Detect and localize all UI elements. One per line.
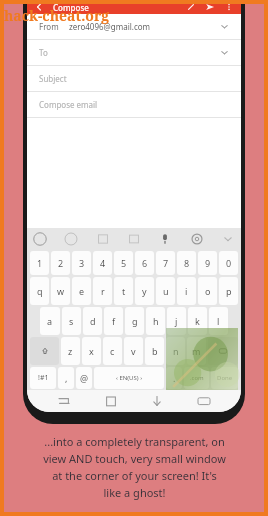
staticText: at the corner of your screen! It's (52, 468, 217, 483)
button[interactable]: k (188, 307, 207, 335)
button[interactable]: From (27, 14, 241, 40)
button[interactable]: Keyboard settings (32, 231, 48, 247)
button[interactable]: Emoji (63, 231, 79, 247)
button[interactable]: 2 (51, 251, 70, 275)
staticText: z (68, 345, 73, 357)
button[interactable]: Shift (30, 337, 59, 365)
button[interactable]: t (114, 277, 133, 305)
button[interactable]: 8 (177, 251, 196, 275)
staticText: view AND touch, very small window (43, 451, 226, 466)
button[interactable]: . (166, 367, 182, 389)
button[interactable]: o (198, 277, 217, 305)
button[interactable]: 6 (135, 251, 154, 275)
button[interactable]: s (62, 307, 81, 335)
staticText: ...into a completely transparent, on (44, 434, 225, 449)
staticText: v (131, 345, 136, 357)
button[interactable]: Stickers (95, 231, 111, 247)
staticText: b (152, 345, 158, 357)
staticText: k (195, 315, 200, 327)
button[interactable]: v (124, 337, 143, 365)
button[interactable]: w (51, 277, 70, 305)
button[interactable]: y (135, 277, 154, 305)
button[interactable]: c (103, 337, 122, 365)
staticText: m (192, 345, 201, 357)
button[interactable]: Keyboard (194, 391, 214, 411)
button[interactable]: Home (101, 391, 121, 411)
staticText: 2 (58, 257, 64, 269)
button[interactable]: g (125, 307, 144, 335)
staticText: 4 (100, 257, 106, 269)
button[interactable]: 1 (30, 251, 49, 275)
button[interactable]: More options (223, 1, 235, 13)
button[interactable]: q (30, 277, 49, 305)
staticText: e (79, 285, 85, 297)
staticText: p (226, 285, 232, 297)
button[interactable]: Voice input (157, 231, 173, 247)
button[interactable]: f (104, 307, 123, 335)
button[interactable]: h (146, 307, 165, 335)
button[interactable]: Collapse (220, 231, 236, 247)
button[interactable]: Subject (27, 66, 241, 92)
button[interactable]: Backspace (208, 337, 238, 365)
button[interactable]: d (83, 307, 102, 335)
button[interactable]: Back (33, 1, 45, 13)
button[interactable]: u (156, 277, 175, 305)
staticText: From (39, 21, 59, 32)
button[interactable]: e (72, 277, 91, 305)
staticText: . (173, 372, 176, 384)
button[interactable]: GIF (126, 231, 142, 247)
button[interactable]: Compose email (27, 92, 241, 118)
staticText: Subject (39, 73, 67, 84)
staticText: a (47, 315, 53, 327)
staticText: , (65, 372, 68, 384)
button[interactable]: x (82, 337, 101, 365)
staticText: f (112, 315, 116, 327)
staticText: x (89, 345, 94, 357)
button[interactable]: l (209, 307, 228, 335)
staticText: h (153, 315, 159, 327)
staticText: Done (217, 374, 233, 382)
button[interactable]: Done (211, 367, 238, 389)
button[interactable]: z (61, 337, 80, 365)
staticText: hack-cheat.org (4, 6, 110, 25)
button[interactable]: m (187, 337, 206, 365)
button[interactable]: b (145, 337, 164, 365)
staticText: i (185, 285, 188, 297)
staticText: Compose (53, 2, 89, 13)
button[interactable]: 5 (114, 251, 133, 275)
staticText: 0 (226, 257, 232, 269)
button[interactable]: 4 (93, 251, 112, 275)
button[interactable]: Send (204, 1, 216, 13)
button[interactable]: r (93, 277, 112, 305)
button[interactable]: p (219, 277, 238, 305)
button[interactable]: 7 (156, 251, 175, 275)
button[interactable]: .com (184, 367, 209, 389)
button[interactable]: @ (76, 367, 92, 389)
staticText: 7 (163, 257, 169, 269)
staticText: ‹ EN(US) › (116, 374, 143, 382)
staticText: u (163, 285, 169, 297)
staticText: zero4096@gmail.com (69, 21, 151, 32)
staticText: g (132, 315, 138, 327)
button[interactable]: Settings (189, 231, 205, 247)
staticText: n (173, 345, 179, 357)
staticText: 5 (121, 257, 127, 269)
staticText: 3 (79, 257, 85, 269)
staticText: t (122, 285, 126, 297)
button[interactable]: To (27, 40, 241, 66)
button[interactable]: Recents (54, 391, 74, 411)
button[interactable]: j (167, 307, 186, 335)
button[interactable]: n (166, 337, 185, 365)
button[interactable]: 0 (219, 251, 238, 275)
button[interactable]: i (177, 277, 196, 305)
staticText: c (110, 345, 115, 357)
button[interactable]: a (40, 307, 60, 335)
button[interactable]: 3 (72, 251, 91, 275)
button[interactable]: , (58, 367, 74, 389)
button[interactable]: ‹ EN(US) › (94, 367, 164, 389)
button[interactable]: Attach (185, 1, 197, 13)
button[interactable]: !#1 (30, 367, 56, 389)
button[interactable]: Hide keyboard (147, 391, 167, 411)
staticText: like a ghost! (103, 485, 166, 500)
button[interactable]: 9 (198, 251, 217, 275)
